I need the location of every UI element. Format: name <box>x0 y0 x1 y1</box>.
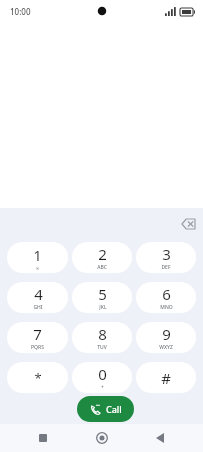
button[interactable]: Backspace <box>178 214 198 234</box>
button[interactable]: 0 <box>72 362 132 393</box>
staticText: TUV <box>97 344 107 351</box>
staticText: Call <box>106 403 122 415</box>
staticText: 4 <box>34 284 43 304</box>
staticText: 0 <box>98 364 107 384</box>
button[interactable]: Recent apps <box>28 424 58 452</box>
staticText: 5 <box>98 284 107 304</box>
staticText: * <box>34 369 42 387</box>
staticText: 8 <box>98 324 107 344</box>
button[interactable]: 4 <box>7 282 68 313</box>
staticText: PQRS <box>31 344 44 351</box>
button[interactable]: 7 <box>7 322 68 353</box>
button[interactable]: 1 <box>7 242 68 273</box>
button[interactable]: Home <box>87 424 117 452</box>
staticText: GHI <box>33 304 43 311</box>
staticText: WXYZ <box>159 344 173 351</box>
staticText: 6 <box>162 284 171 304</box>
staticText: 1 <box>33 245 42 265</box>
staticText: + <box>101 384 104 391</box>
staticText: JKL <box>99 304 107 311</box>
staticText: ABC <box>97 264 107 271</box>
button[interactable]: 2 <box>72 242 132 273</box>
button[interactable]: 5 <box>72 282 132 313</box>
button[interactable]: Back <box>145 424 175 452</box>
button[interactable]: * <box>7 362 68 393</box>
button[interactable]: 3 <box>136 242 196 273</box>
staticText: MNO <box>160 304 173 311</box>
button[interactable]: 9 <box>136 322 196 353</box>
button[interactable]: 8 <box>72 322 132 353</box>
staticText: # <box>161 368 171 388</box>
staticText: 2 <box>98 244 107 264</box>
staticText: 3 <box>162 244 171 264</box>
button[interactable]: 6 <box>136 282 196 313</box>
staticText: ∞ <box>35 265 40 271</box>
staticText: 9 <box>162 324 171 344</box>
staticText: 7 <box>33 324 42 344</box>
staticText: DEF <box>161 264 171 271</box>
button[interactable]: # <box>136 362 196 393</box>
button[interactable]: Call <box>77 396 134 422</box>
staticText: 10:00 <box>10 6 31 17</box>
